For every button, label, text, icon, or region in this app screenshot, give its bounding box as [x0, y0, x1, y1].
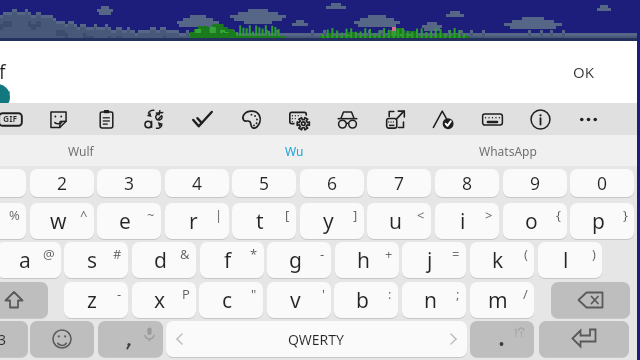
button[interactable]: Enter	[539, 321, 629, 357]
button[interactable]: Spell check	[182, 103, 222, 135]
button[interactable]: h	[335, 242, 399, 278]
button[interactable]: WhatsApp	[401, 135, 614, 166]
button[interactable]: More options	[568, 103, 608, 135]
button[interactable]: Keyboard layout	[472, 103, 512, 135]
button[interactable]: Emoji	[30, 321, 94, 357]
button[interactable]: Space	[166, 321, 467, 357]
staticText: 123	[0, 330, 7, 349]
button[interactable]: w	[30, 203, 94, 239]
button[interactable]: c	[199, 282, 263, 318]
button[interactable]: Stickers	[38, 103, 78, 135]
staticText: P	[182, 285, 190, 303]
button[interactable]: GIF	[0, 103, 30, 135]
button[interactable]: 9	[503, 169, 567, 197]
button[interactable]: e	[97, 203, 161, 239]
staticText: h	[357, 246, 370, 275]
staticText: c	[222, 286, 233, 315]
button[interactable]: 6	[300, 169, 364, 197]
button[interactable]: o	[503, 203, 567, 239]
button[interactable]: 7	[367, 169, 431, 197]
staticText: g	[289, 246, 302, 275]
staticText: x	[154, 286, 166, 315]
staticText: #	[113, 245, 122, 263]
button[interactable]: 5	[232, 169, 296, 197]
button[interactable]: x	[132, 282, 196, 318]
button[interactable]: Wulf	[0, 135, 188, 166]
staticText: /	[523, 285, 528, 303]
staticText: v	[290, 286, 301, 315]
button[interactable]: d	[132, 242, 196, 278]
staticText: )	[592, 245, 596, 263]
button[interactable]: Shift	[0, 282, 48, 318]
button[interactable]: Comma and voice input	[98, 321, 163, 357]
staticText: OK	[573, 62, 595, 82]
button[interactable]: Info	[520, 103, 560, 135]
staticText: m	[488, 286, 508, 315]
button[interactable]: v	[267, 282, 331, 318]
button[interactable]: l	[538, 242, 602, 278]
staticText: Wulf	[68, 143, 94, 159]
button[interactable]: 3	[97, 169, 161, 197]
staticText: w	[50, 207, 67, 236]
staticText: QWERTY	[288, 330, 345, 349]
button[interactable]: 4	[165, 169, 229, 197]
button[interactable]: Wu	[188, 135, 401, 166]
button[interactable]: 8	[435, 169, 499, 197]
button[interactable]: 0	[570, 169, 634, 197]
button[interactable]: a	[0, 242, 61, 278]
staticText: s	[87, 246, 98, 275]
staticText: 6	[327, 171, 338, 195]
button[interactable]: Clipboard	[86, 103, 126, 135]
button[interactable]: Period	[470, 321, 534, 357]
button[interactable]: f	[200, 242, 264, 278]
button[interactable]: p	[570, 203, 634, 239]
staticText: WhatsApp	[479, 143, 537, 159]
button[interactable]: g	[267, 242, 331, 278]
button[interactable]: j	[402, 242, 466, 278]
staticText: 3	[124, 171, 135, 195]
staticText: b	[356, 286, 369, 315]
button[interactable]: 1	[0, 169, 26, 197]
button[interactable]: i	[435, 203, 499, 239]
button[interactable]: s	[64, 242, 128, 278]
staticText: y	[323, 207, 334, 236]
staticText: 9	[530, 171, 541, 195]
staticText: |	[215, 206, 223, 224]
button[interactable]: Handwriting	[423, 103, 463, 135]
staticText: k	[492, 246, 504, 275]
button[interactable]: u	[367, 203, 431, 239]
button[interactable]: Backspace	[551, 282, 630, 318]
staticText: l	[563, 246, 569, 275]
button[interactable]: b	[334, 282, 398, 318]
button[interactable]: Incognito mode	[327, 103, 367, 135]
staticText: u	[389, 207, 402, 236]
button[interactable]: Symbols	[0, 321, 28, 357]
button[interactable]: q	[0, 203, 26, 239]
button[interactable]: k	[470, 242, 534, 278]
staticText: %	[9, 206, 20, 224]
button[interactable]: z	[64, 282, 128, 318]
staticText: [	[285, 206, 290, 224]
staticText: 2	[57, 171, 68, 195]
button[interactable]: OK	[561, 53, 607, 91]
staticText: i	[460, 207, 466, 236]
button[interactable]: 2	[30, 169, 94, 197]
button[interactable]: Keyboard settings	[279, 103, 319, 135]
staticText: :	[388, 285, 392, 303]
button[interactable]: t	[232, 203, 296, 239]
staticText: GIF	[3, 113, 18, 125]
staticText: 8	[462, 171, 473, 195]
button[interactable]: n	[402, 282, 466, 318]
button[interactable]: m	[470, 282, 534, 318]
button[interactable]: Translate	[134, 103, 174, 135]
staticText: @	[43, 245, 55, 263]
staticText: -	[320, 245, 325, 263]
button[interactable]: Themes	[231, 103, 271, 135]
staticText: j	[427, 246, 433, 275]
button[interactable]: r	[165, 203, 229, 239]
button[interactable]: Share text	[375, 103, 415, 135]
button[interactable]: y	[300, 203, 364, 239]
staticText: z	[87, 286, 97, 315]
staticText: *	[250, 245, 258, 263]
staticText: 5	[259, 171, 270, 195]
